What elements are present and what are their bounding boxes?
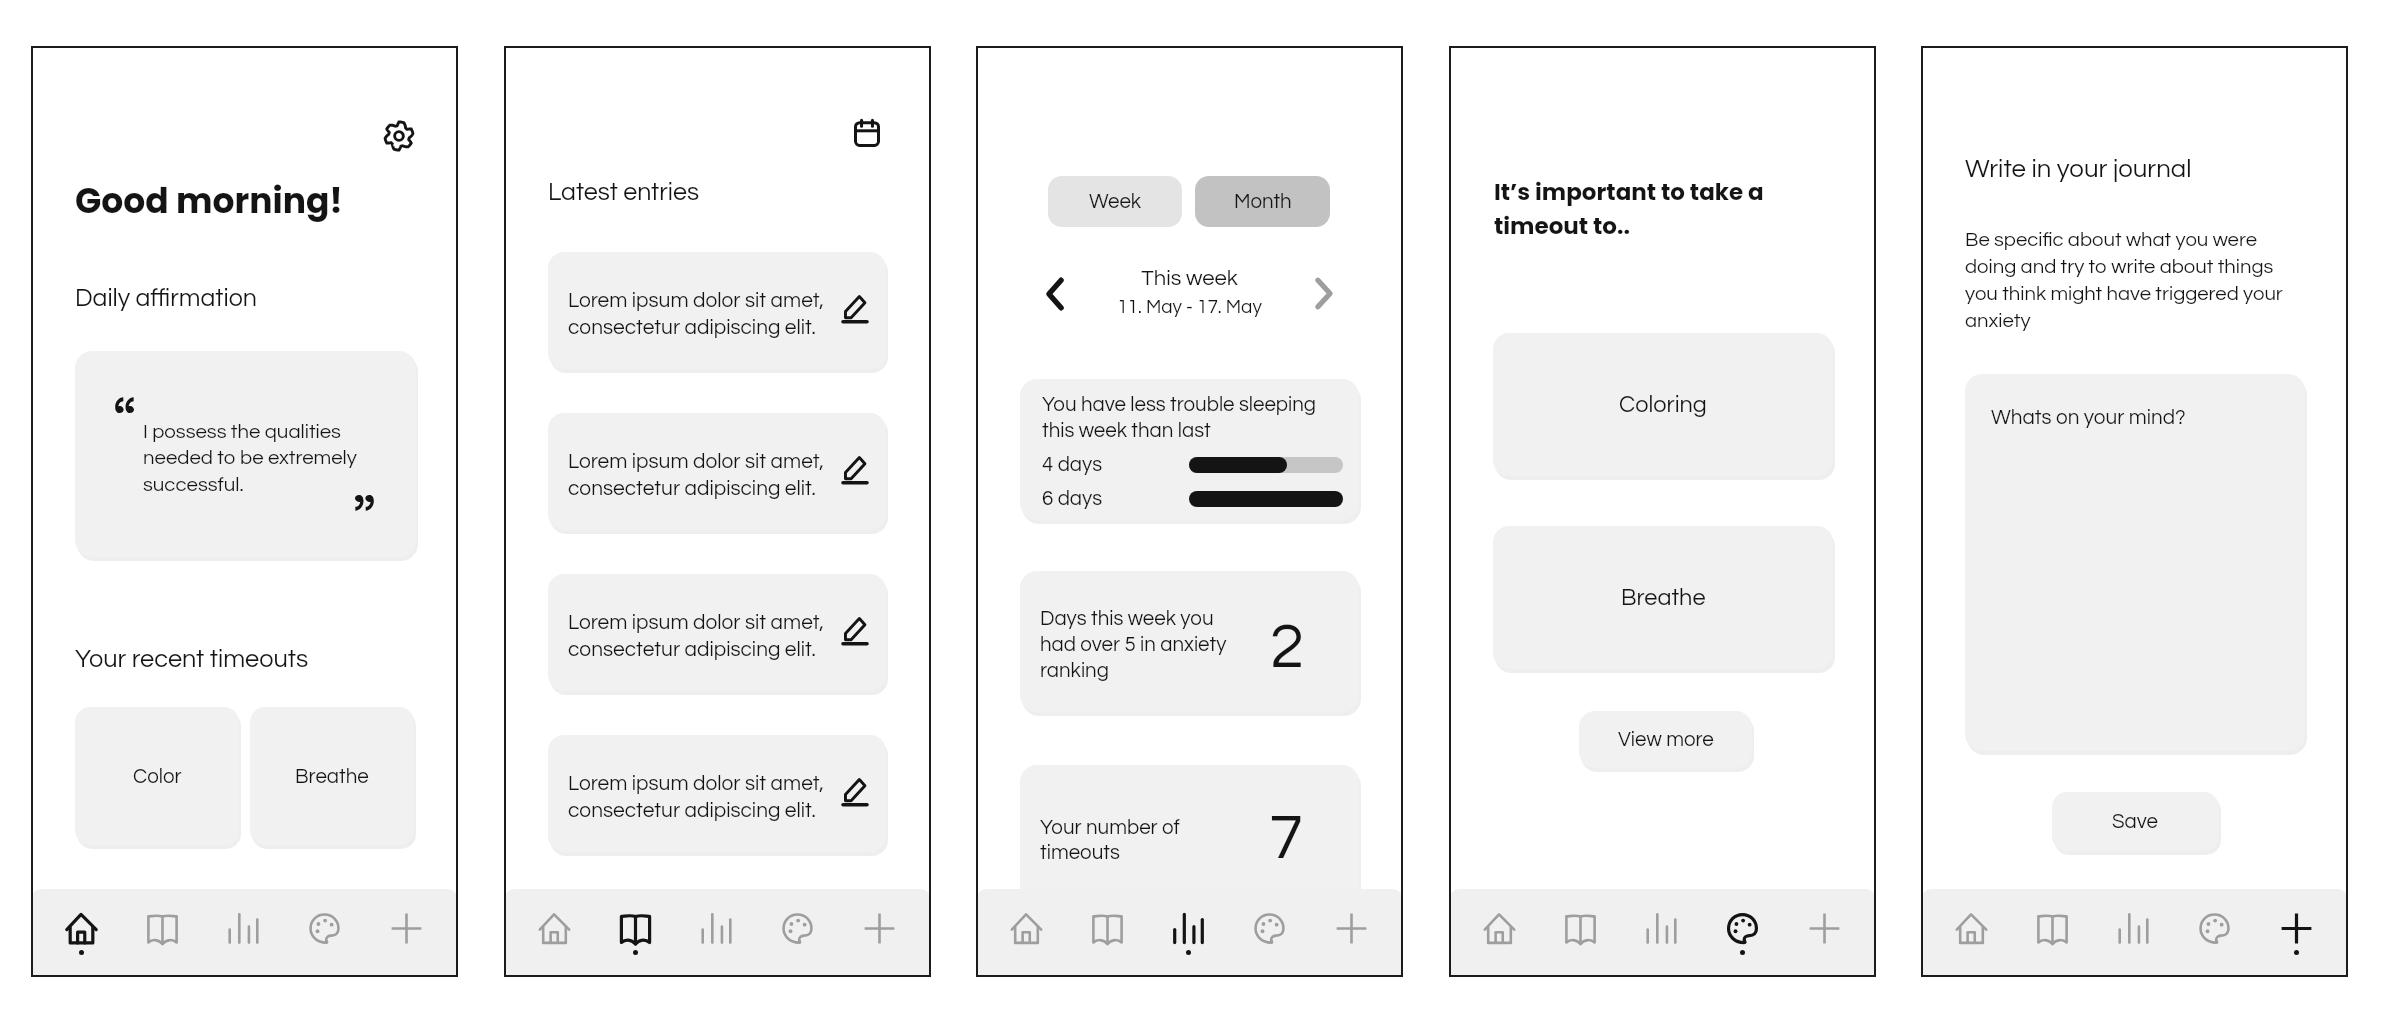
staticText: View more	[1618, 729, 1714, 750]
button[interactable]: Next week	[1307, 270, 1341, 316]
staticText: Week	[1089, 191, 1142, 212]
staticText: Lorem ipsum dolor sit amet, consectetur …	[568, 773, 824, 822]
staticText: 11. May - 17. May	[1117, 297, 1262, 317]
button[interactable]: Add	[1325, 889, 1377, 977]
button[interactable]: Statistics	[1635, 889, 1687, 977]
button[interactable]: Home	[55, 889, 107, 977]
staticText: Breathe	[295, 766, 369, 787]
staticText: Daily affirmation	[75, 285, 257, 311]
button[interactable]: Activities	[298, 889, 350, 977]
button[interactable]: Activities	[2188, 889, 2240, 977]
staticText: Your recent timeouts	[75, 646, 309, 672]
button[interactable]: Home	[528, 889, 580, 977]
button[interactable]: Edit entry	[841, 294, 869, 324]
button[interactable]: Previous week	[1038, 270, 1072, 316]
button[interactable]: Activities	[1716, 889, 1768, 977]
button[interactable]: Add	[380, 889, 432, 977]
button[interactable]: Add	[1798, 889, 1850, 977]
staticText: I possess the qualities needed to be ext…	[143, 421, 357, 496]
button[interactable]: Edit entry	[841, 616, 869, 646]
staticText: Lorem ipsum dolor sit amet, consectetur …	[568, 290, 824, 339]
staticText: Breathe	[1621, 586, 1706, 610]
button[interactable]: Statistics	[1162, 889, 1214, 977]
button[interactable]: Journal	[1081, 889, 1133, 977]
button[interactable]: Activities	[1243, 889, 1295, 977]
button[interactable]: Statistics	[2107, 889, 2159, 977]
button[interactable]: Edit entry	[841, 777, 869, 807]
staticText: Days this week you had over 5 in anxiety…	[1040, 608, 1227, 681]
button[interactable]: Week	[1048, 176, 1182, 227]
button[interactable]: Home	[1473, 889, 1525, 977]
staticText: Coloring	[1619, 393, 1707, 417]
button[interactable]: Settings	[384, 121, 414, 151]
staticText: Save	[2112, 811, 2159, 832]
staticText: Be specific about what you were doing an…	[1965, 229, 2283, 331]
button[interactable]: Home	[1945, 889, 1997, 977]
button[interactable]: Journal	[1554, 889, 1606, 977]
staticText: Lorem ipsum dolor sit amet, consectetur …	[568, 451, 824, 500]
staticText: 7	[1269, 807, 1304, 871]
button[interactable]: Journal	[2026, 889, 2078, 977]
button[interactable]: Edit entry	[841, 455, 869, 485]
button[interactable]: Add	[2270, 889, 2322, 977]
staticText: You have less trouble sleeping this week…	[1042, 394, 1317, 441]
button[interactable]: Calendar	[854, 120, 880, 147]
staticText: Latest entries	[548, 179, 699, 205]
staticText: It’s important to take a timeout to..	[1494, 176, 1764, 242]
button[interactable]: Journal	[136, 889, 188, 977]
button[interactable]: Month	[1195, 176, 1330, 227]
staticText: This week	[1141, 267, 1238, 290]
staticText: Your number of timeouts	[1040, 817, 1180, 864]
staticText: Month	[1234, 191, 1292, 212]
button[interactable]: Home	[1000, 889, 1052, 977]
staticText: Color	[133, 766, 182, 787]
button[interactable]: Add	[853, 889, 905, 977]
staticText: 6 days	[1042, 488, 1103, 509]
button[interactable]: Activities	[771, 889, 823, 977]
button[interactable]: Journal	[609, 889, 661, 977]
staticText: 2	[1270, 616, 1305, 680]
staticText: 4 days	[1042, 454, 1103, 475]
staticText: Good morning!	[75, 177, 343, 225]
staticText: Write in your journal	[1965, 156, 2192, 183]
staticText: Whats on your mind?	[1991, 407, 2186, 428]
button[interactable]: Statistics	[690, 889, 742, 977]
staticText: Lorem ipsum dolor sit amet, consectetur …	[568, 612, 824, 661]
button[interactable]: Statistics	[217, 889, 269, 977]
